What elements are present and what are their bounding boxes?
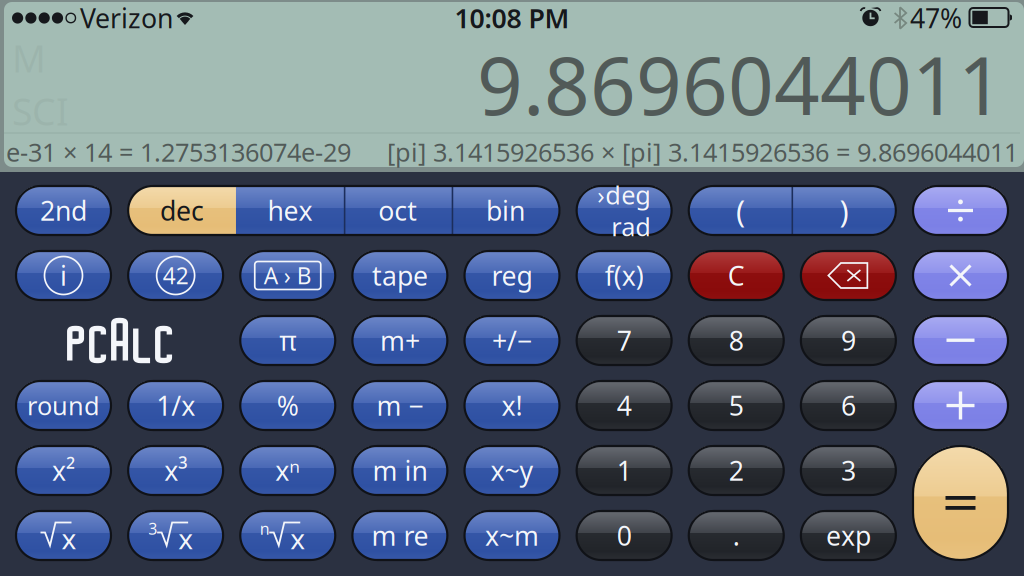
button[interactable]: 8 xyxy=(689,316,784,365)
staticText: ( xyxy=(736,190,745,231)
staticText: x! xyxy=(501,388,522,423)
staticText: f(x) xyxy=(605,258,644,293)
staticText: 9.8696044011 xyxy=(477,31,1004,137)
staticText: 8 xyxy=(729,323,744,358)
staticText: › xyxy=(597,179,604,211)
button[interactable]: C xyxy=(689,251,784,300)
button[interactable]: f(x) xyxy=(577,251,672,300)
staticText: 7 xyxy=(617,323,632,358)
button[interactable]: 3 xyxy=(801,446,896,495)
staticText: x² xyxy=(52,453,75,488)
button[interactable]: π xyxy=(240,316,335,365)
staticText: 10:08 PM xyxy=(454,0,569,36)
button[interactable]: Constants xyxy=(128,251,223,300)
button[interactable]: reg xyxy=(464,251,559,300)
staticText: 1/x xyxy=(156,388,195,423)
button[interactable]: exp xyxy=(801,511,896,560)
staticText: % xyxy=(277,388,299,423)
staticText: hex xyxy=(267,193,312,228)
staticText: x xyxy=(290,520,305,557)
staticText: Verizon xyxy=(80,0,173,36)
staticText: x³ xyxy=(164,453,187,488)
button[interactable]: hex xyxy=(236,186,344,235)
staticText: 2 xyxy=(729,453,744,488)
button[interactable]: bin xyxy=(452,186,559,235)
button[interactable]: nth root xyxy=(240,511,335,560)
button[interactable]: 0 xyxy=(577,511,672,560)
button[interactable]: . xyxy=(689,511,784,560)
staticText: 6 xyxy=(841,388,856,423)
staticText: x~y xyxy=(490,453,533,488)
button[interactable]: round xyxy=(16,381,111,430)
button[interactable]: % xyxy=(240,381,335,430)
button[interactable]: Convert A to B xyxy=(240,251,335,300)
button[interactable]: x~m xyxy=(464,511,559,560)
button[interactable]: x~y xyxy=(464,446,559,495)
staticText: 2nd xyxy=(40,193,87,228)
button[interactable]: m+ xyxy=(352,316,447,365)
button[interactable]: m − xyxy=(352,381,447,430)
button[interactable]: Equals xyxy=(913,446,1008,560)
staticText: round xyxy=(27,389,100,422)
button[interactable]: 2nd xyxy=(16,186,111,235)
staticText: dec xyxy=(160,193,204,228)
button[interactable]: degrees or radians xyxy=(577,186,672,235)
staticText: 3 xyxy=(841,453,856,488)
button[interactable]: x² xyxy=(16,446,111,495)
button[interactable]: Square root xyxy=(16,511,111,560)
staticText: rad xyxy=(611,209,651,243)
button[interactable]: 9 xyxy=(801,316,896,365)
button[interactable]: Info xyxy=(16,251,111,300)
staticText: e-31 × 14 = 1.2753136074e-29 xyxy=(6,135,351,169)
staticText: m+ xyxy=(380,323,420,358)
staticText: deg xyxy=(605,178,651,211)
staticText: x~m xyxy=(485,518,539,553)
staticText: SCI xyxy=(12,86,69,136)
button[interactable]: ) xyxy=(792,186,896,235)
button[interactable]: 4 xyxy=(577,381,672,430)
button[interactable]: 1/x xyxy=(128,381,223,430)
button[interactable]: tape xyxy=(352,251,447,300)
button[interactable]: 7 xyxy=(577,316,672,365)
button[interactable]: Cube root xyxy=(128,511,223,560)
staticText: n xyxy=(260,518,270,539)
staticText: 42 xyxy=(163,260,189,290)
staticText: . xyxy=(733,518,740,553)
button[interactable]: xⁿ xyxy=(240,446,335,495)
button[interactable]: 6 xyxy=(801,381,896,430)
staticText: 4 xyxy=(617,388,632,423)
button[interactable]: Subtract xyxy=(913,316,1008,365)
button[interactable]: 1 xyxy=(577,446,672,495)
staticText: 1 xyxy=(617,453,632,488)
button[interactable]: Divide xyxy=(913,186,1008,235)
button[interactable]: ( xyxy=(689,186,792,235)
staticText: m in xyxy=(372,453,427,488)
button[interactable]: x! xyxy=(464,381,559,430)
staticText: tape xyxy=(372,258,428,293)
staticText: π xyxy=(279,323,296,358)
staticText: oct xyxy=(378,193,417,228)
button[interactable]: +/− xyxy=(464,316,559,365)
staticText: m re xyxy=(371,518,428,553)
staticText: 3 xyxy=(148,518,157,539)
staticText: reg xyxy=(491,258,532,293)
staticText: 5 xyxy=(729,388,744,423)
staticText: x xyxy=(178,520,193,557)
button[interactable]: 2 xyxy=(689,446,784,495)
staticText: x xyxy=(61,520,76,557)
button[interactable]: m in xyxy=(352,446,447,495)
button[interactable]: m re xyxy=(352,511,447,560)
button[interactable]: x³ xyxy=(128,446,223,495)
button[interactable]: Multiply xyxy=(913,251,1008,300)
button[interactable]: oct xyxy=(344,186,452,235)
button[interactable]: 5 xyxy=(689,381,784,430)
staticText: C xyxy=(728,258,745,293)
staticText: xⁿ xyxy=(275,453,300,488)
button[interactable]: Add xyxy=(913,381,1008,430)
staticText: 47% xyxy=(910,0,962,36)
button[interactable]: dec xyxy=(128,186,236,235)
staticText: bin xyxy=(486,193,525,228)
staticText: i xyxy=(60,258,67,293)
button[interactable]: Delete xyxy=(801,251,896,300)
